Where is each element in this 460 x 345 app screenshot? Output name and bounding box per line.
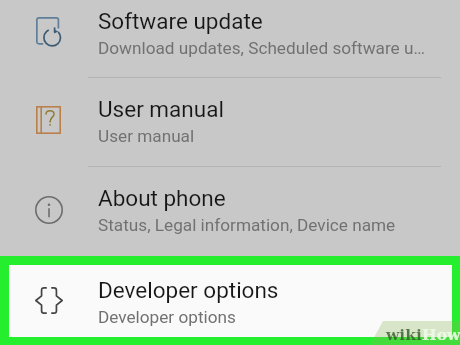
button[interactable]: User manual	[0, 78, 460, 166]
staticText: How	[422, 325, 460, 343]
staticText: Developer options	[98, 307, 236, 327]
staticText: Developer options	[98, 277, 279, 303]
button[interactable]: Software update	[0, 0, 460, 77]
button[interactable]: Developer options	[0, 265, 460, 336]
button[interactable]: About phone	[0, 167, 460, 256]
staticText: Download updates, Scheduled software u…	[98, 38, 425, 58]
staticText: About phone	[98, 185, 226, 211]
staticText: User manual	[98, 96, 224, 122]
staticText: User manual	[98, 126, 195, 146]
staticText: wiki	[386, 325, 422, 343]
other: Developer options	[35, 287, 63, 314]
other: User manual	[36, 106, 61, 134]
other: About phone	[35, 196, 63, 224]
staticText: Software update	[98, 8, 263, 34]
staticText: Status, Legal information, Device name	[98, 215, 396, 235]
other: Software update	[36, 17, 63, 47]
